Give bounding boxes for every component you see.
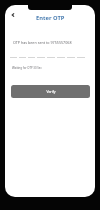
button[interactable]: Verify xyxy=(11,85,90,98)
staticText: OTP has been sent to 9755557068 xyxy=(13,40,72,45)
button[interactable]: Back xyxy=(8,10,17,19)
staticText: Enter OTP xyxy=(36,14,65,22)
staticText: Waiting for OTP 30 Sec xyxy=(12,66,42,70)
staticText: Verify xyxy=(46,89,56,94)
